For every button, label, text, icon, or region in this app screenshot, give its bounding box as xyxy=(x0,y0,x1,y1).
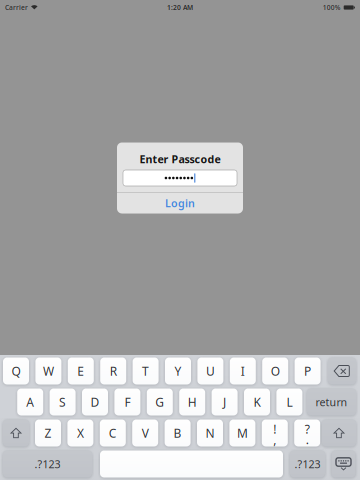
button[interactable]: U xyxy=(197,357,223,384)
button[interactable]: P xyxy=(295,357,321,384)
staticText: 1:20 AM xyxy=(167,3,193,12)
button[interactable]: R xyxy=(100,357,126,384)
staticText: Login xyxy=(165,196,195,210)
button[interactable]: .?123 xyxy=(3,450,92,477)
staticText: J xyxy=(223,394,226,410)
button[interactable]: ? xyxy=(294,419,320,446)
staticText: R xyxy=(110,363,117,379)
staticText: P xyxy=(304,363,311,379)
button[interactable]: J xyxy=(212,388,238,415)
button[interactable]: Shift xyxy=(322,419,356,446)
staticText: Q xyxy=(11,363,20,379)
button[interactable]: .?123 xyxy=(290,450,325,477)
button[interactable]: Space xyxy=(100,450,283,477)
staticText: D xyxy=(90,394,99,410)
staticText: V xyxy=(142,425,149,441)
button[interactable]: B xyxy=(165,419,191,446)
staticText: Carrier xyxy=(5,3,28,12)
button[interactable]: Hide Keyboard xyxy=(331,450,355,477)
button[interactable]: X xyxy=(67,419,93,446)
staticText: I xyxy=(241,363,245,379)
staticText: S xyxy=(59,394,66,410)
staticText: return xyxy=(315,395,347,409)
button[interactable]: A xyxy=(17,388,43,415)
staticText: .?123 xyxy=(34,457,60,471)
button[interactable]: Delete xyxy=(328,357,356,384)
staticText: C xyxy=(109,425,117,441)
button[interactable]: Shift xyxy=(3,419,29,446)
staticText: G xyxy=(155,394,164,410)
button[interactable]: Z xyxy=(35,419,61,446)
staticText: T xyxy=(142,363,149,379)
button[interactable]: ! xyxy=(262,419,288,446)
staticText: L xyxy=(286,394,292,410)
staticText: N xyxy=(205,425,214,441)
staticText: E xyxy=(77,363,84,379)
staticText: .?123 xyxy=(294,457,320,471)
staticText: ! xyxy=(273,421,276,437)
button[interactable]: O xyxy=(262,357,288,384)
staticText: Z xyxy=(44,425,51,441)
button[interactable]: L xyxy=(276,388,302,415)
button[interactable]: D xyxy=(82,388,108,415)
button[interactable]: F xyxy=(114,388,140,415)
staticText: B xyxy=(174,425,182,441)
staticText: M xyxy=(237,425,248,441)
staticText: H xyxy=(188,394,197,410)
staticText: K xyxy=(253,394,260,410)
staticText: X xyxy=(77,425,84,441)
button[interactable]: K xyxy=(244,388,270,415)
staticText: F xyxy=(124,394,130,410)
staticText: Y xyxy=(174,363,181,379)
staticText: 100% xyxy=(323,3,341,12)
button[interactable]: N xyxy=(197,419,223,446)
button[interactable]: T xyxy=(133,357,159,384)
button[interactable]: C xyxy=(100,419,126,446)
button[interactable]: Y xyxy=(165,357,191,384)
button[interactable]: I xyxy=(230,357,256,384)
button[interactable]: W xyxy=(35,357,61,384)
staticText: . xyxy=(306,431,309,447)
button[interactable]: M xyxy=(229,419,255,446)
button[interactable]: return xyxy=(307,388,356,415)
button[interactable]: V xyxy=(132,419,158,446)
staticText: U xyxy=(206,363,215,379)
staticText: W xyxy=(43,363,54,379)
staticText: A xyxy=(26,394,34,410)
button[interactable]: H xyxy=(179,388,205,415)
button[interactable]: Q xyxy=(3,357,29,384)
staticText: O xyxy=(271,363,280,379)
button[interactable]: S xyxy=(50,388,76,415)
staticText: Enter Passcode xyxy=(139,152,220,166)
button[interactable]: E xyxy=(68,357,94,384)
button[interactable]: G xyxy=(147,388,173,415)
staticText: ? xyxy=(305,421,310,437)
button[interactable]: Login xyxy=(117,193,243,213)
staticText: , xyxy=(273,431,276,447)
